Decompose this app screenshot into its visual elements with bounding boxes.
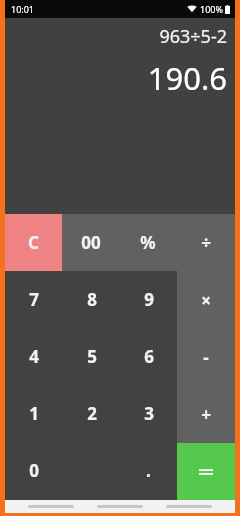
button[interactable]: 6 — [120, 328, 177, 385]
button[interactable]: C — [5, 214, 62, 271]
button[interactable]: 2 — [63, 385, 120, 442]
button[interactable]: 8 — [63, 271, 120, 328]
staticText: 7 — [29, 288, 39, 311]
button[interactable]: 7 — [5, 271, 63, 328]
staticText: 9 — [144, 288, 154, 311]
button[interactable]: 5 — [63, 328, 120, 385]
button[interactable]: + — [177, 386, 235, 443]
staticText: 0 — [29, 459, 39, 482]
staticText: 2 — [87, 402, 97, 425]
staticText: 190.6 — [147, 57, 227, 99]
staticText: . — [146, 459, 151, 482]
button[interactable]: - — [177, 329, 235, 386]
staticText: 8 — [87, 288, 97, 311]
button[interactable]: 3 — [120, 385, 177, 442]
button[interactable]: 9 — [120, 271, 177, 328]
staticText: 6 — [144, 345, 154, 368]
button[interactable]: Equals — [177, 443, 235, 500]
button[interactable]: Navigation gesture — [97, 505, 143, 508]
staticText: - — [203, 346, 209, 369]
staticText: 4 — [29, 345, 39, 368]
button[interactable]: 1 — [5, 385, 63, 442]
button[interactable]: 00 — [62, 214, 119, 271]
staticText: % — [140, 231, 156, 254]
staticText: C — [28, 231, 39, 254]
staticText: ÷ — [201, 231, 211, 254]
staticText: 100% — [200, 3, 223, 15]
staticText: 5 — [87, 345, 97, 368]
button[interactable]: 4 — [5, 328, 63, 385]
staticText: 3 — [144, 402, 154, 425]
staticText: 1 — [29, 402, 39, 425]
staticText: 00 — [81, 231, 101, 254]
staticText: × — [201, 289, 211, 312]
button[interactable]: % — [119, 214, 177, 271]
button[interactable]: × — [177, 271, 235, 329]
button[interactable]: ÷ — [177, 214, 235, 271]
button[interactable]: 0 — [5, 442, 63, 499]
button[interactable]: Navigation gesture — [28, 505, 74, 508]
button[interactable]: Navigation gesture — [166, 505, 212, 508]
staticText: + — [201, 403, 211, 426]
staticText: 10:01 — [11, 3, 35, 15]
button[interactable]: . — [120, 442, 177, 499]
staticText: 963÷5-2 — [159, 24, 227, 49]
